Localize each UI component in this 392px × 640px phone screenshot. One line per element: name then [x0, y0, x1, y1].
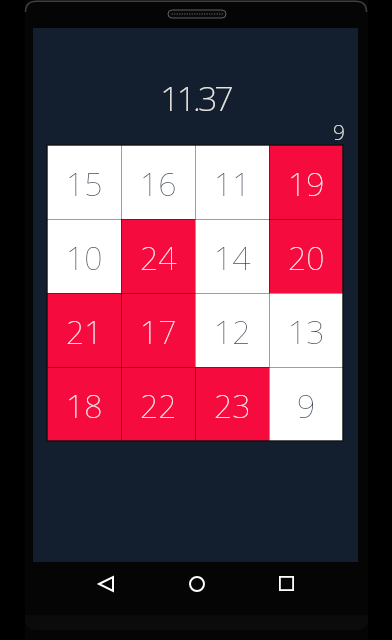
button[interactable]: Back: [90, 568, 122, 600]
button[interactable]: 16: [121, 145, 195, 219]
staticText: 12: [214, 310, 251, 354]
button[interactable]: 21: [47, 293, 121, 367]
staticText: 10: [66, 236, 103, 280]
button[interactable]: 17: [121, 293, 195, 367]
button[interactable]: 18: [47, 367, 121, 441]
button[interactable]: 11: [195, 145, 269, 219]
button[interactable]: 10: [47, 219, 121, 293]
button[interactable]: Recents: [270, 567, 302, 599]
staticText: 22: [140, 384, 177, 428]
button[interactable]: Home: [181, 568, 213, 600]
staticText: 11: [214, 162, 251, 206]
staticText: 17: [140, 310, 177, 354]
staticText: 24: [140, 236, 177, 280]
staticText: 20: [288, 236, 325, 280]
staticText: 15: [66, 162, 103, 206]
button[interactable]: 13: [269, 293, 343, 367]
button[interactable]: 24: [121, 219, 195, 293]
button[interactable]: 19: [269, 145, 343, 219]
button[interactable]: 23: [195, 367, 269, 441]
button[interactable]: 20: [269, 219, 343, 293]
staticText: 11.37: [33, 75, 358, 119]
button[interactable]: 9: [269, 367, 343, 441]
staticText: 18: [66, 384, 103, 428]
staticText: 21: [66, 310, 103, 354]
button[interactable]: 15: [47, 145, 121, 219]
staticText: 14: [214, 236, 251, 280]
staticText: 23: [214, 384, 251, 428]
staticText: 16: [140, 162, 177, 206]
staticText: 9: [333, 118, 345, 142]
staticText: 13: [288, 310, 325, 354]
staticText: 9: [297, 384, 316, 428]
staticText: 19: [288, 162, 325, 206]
button[interactable]: 22: [121, 367, 195, 441]
button[interactable]: 12: [195, 293, 269, 367]
button[interactable]: 14: [195, 219, 269, 293]
